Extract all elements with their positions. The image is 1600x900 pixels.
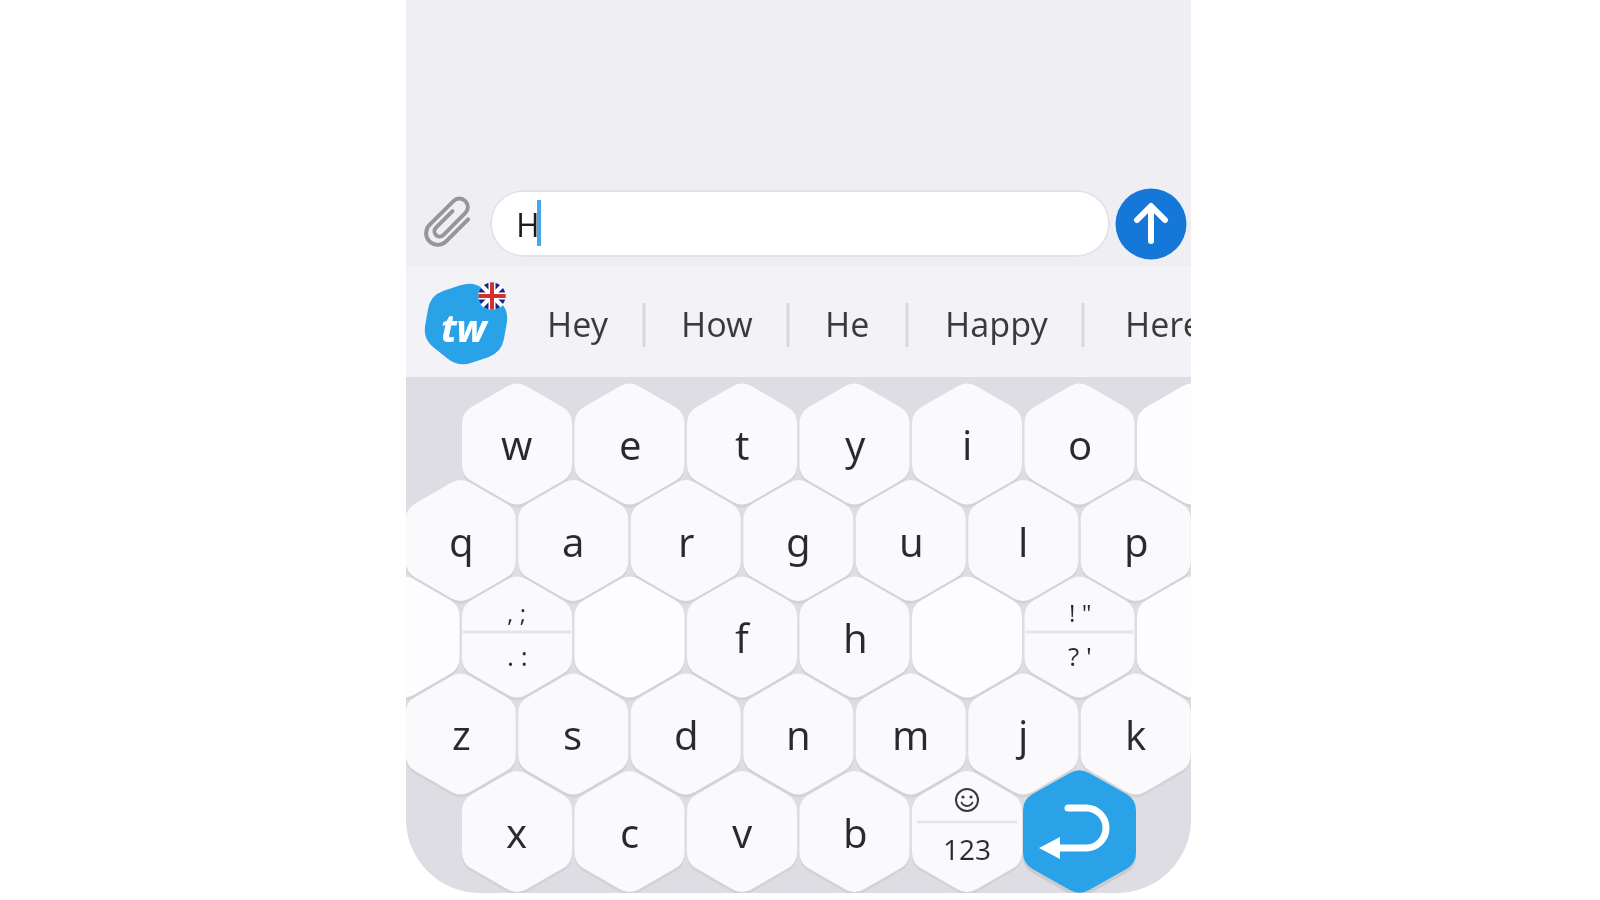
staticText: q: [449, 514, 474, 568]
button[interactable]: k: [1083, 681, 1189, 787]
staticText: w: [501, 417, 533, 471]
staticText: y: [845, 417, 866, 471]
button[interactable]: a: [520, 488, 626, 594]
button[interactable]: [917, 582, 1017, 692]
button[interactable]: Here: [1098, 294, 1191, 354]
staticText: r: [678, 514, 695, 568]
staticText: k: [1125, 707, 1147, 761]
staticText: v: [732, 805, 753, 859]
button[interactable]: [421, 198, 473, 250]
staticText: tw: [441, 301, 487, 353]
button[interactable]: 123: [917, 829, 1017, 869]
staticText: z: [452, 707, 471, 761]
staticText: h: [843, 610, 868, 664]
button[interactable]: tw: [419, 297, 509, 357]
staticText: i: [962, 417, 973, 471]
staticText: d: [674, 707, 699, 761]
staticText: t: [735, 417, 750, 471]
staticText: l: [1018, 514, 1029, 568]
staticText: n: [786, 707, 811, 761]
button[interactable]: m: [858, 681, 964, 787]
staticText: a: [562, 514, 585, 568]
button[interactable]: [490, 190, 1110, 257]
staticText: Happy: [945, 301, 1048, 347]
staticText: c: [620, 805, 640, 859]
button[interactable]: y: [802, 391, 908, 497]
button[interactable]: i: [914, 391, 1020, 497]
staticText: m: [892, 707, 930, 761]
staticText: s: [563, 707, 583, 761]
button[interactable]: [1025, 772, 1135, 892]
button[interactable]: [406, 582, 455, 692]
button[interactable]: w: [464, 391, 570, 497]
staticText: x: [506, 805, 528, 859]
button[interactable]: v: [689, 779, 795, 885]
button[interactable]: [580, 582, 680, 692]
button[interactable]: [1142, 389, 1191, 499]
staticText: H: [516, 203, 540, 247]
staticText: p: [1124, 514, 1149, 568]
button[interactable]: j: [970, 681, 1076, 787]
staticText: u: [899, 514, 924, 568]
staticText: Hey: [547, 301, 609, 347]
button[interactable]: d: [633, 681, 739, 787]
staticText: Here: [1125, 301, 1191, 347]
button[interactable]: Happy: [931, 294, 1061, 354]
button[interactable]: p: [1083, 488, 1189, 594]
staticText: ! ": [1069, 596, 1092, 629]
button[interactable]: Hey: [513, 294, 643, 354]
button[interactable]: o: [1027, 391, 1133, 497]
button[interactable]: f: [689, 584, 795, 690]
staticText: o: [1068, 417, 1093, 471]
button[interactable]: [1116, 189, 1187, 260]
staticText: b: [843, 805, 868, 859]
staticText: ? ': [1068, 638, 1092, 673]
button[interactable]: h: [802, 584, 908, 690]
button[interactable]: q: [408, 488, 514, 594]
staticText: How: [681, 301, 753, 347]
button[interactable]: l: [970, 488, 1076, 594]
button[interactable]: s: [520, 681, 626, 787]
button[interactable]: ! ": [1035, 595, 1125, 629]
button[interactable]: . :: [472, 635, 562, 675]
button[interactable]: z: [408, 681, 514, 787]
button[interactable]: r: [633, 488, 739, 594]
button[interactable]: He: [782, 294, 912, 354]
staticText: e: [619, 417, 642, 471]
button[interactable]: , ;: [472, 595, 562, 629]
button[interactable]: t: [689, 391, 795, 497]
button[interactable]: n: [745, 681, 851, 787]
button[interactable]: e: [577, 391, 683, 497]
button[interactable]: ? ': [1035, 635, 1125, 675]
staticText: f: [735, 610, 749, 664]
button[interactable]: x: [464, 779, 570, 885]
button[interactable]: How: [652, 294, 782, 354]
staticText: , ;: [507, 596, 527, 629]
staticText: j: [1018, 707, 1029, 761]
staticText: He: [825, 301, 870, 347]
staticText: g: [786, 514, 811, 568]
button[interactable]: c: [577, 779, 683, 885]
button[interactable]: u: [858, 488, 964, 594]
button[interactable]: [1142, 582, 1191, 692]
button[interactable]: g: [745, 488, 851, 594]
button[interactable]: b: [802, 779, 908, 885]
staticText: . :: [507, 638, 528, 673]
staticText: 123: [943, 830, 992, 868]
